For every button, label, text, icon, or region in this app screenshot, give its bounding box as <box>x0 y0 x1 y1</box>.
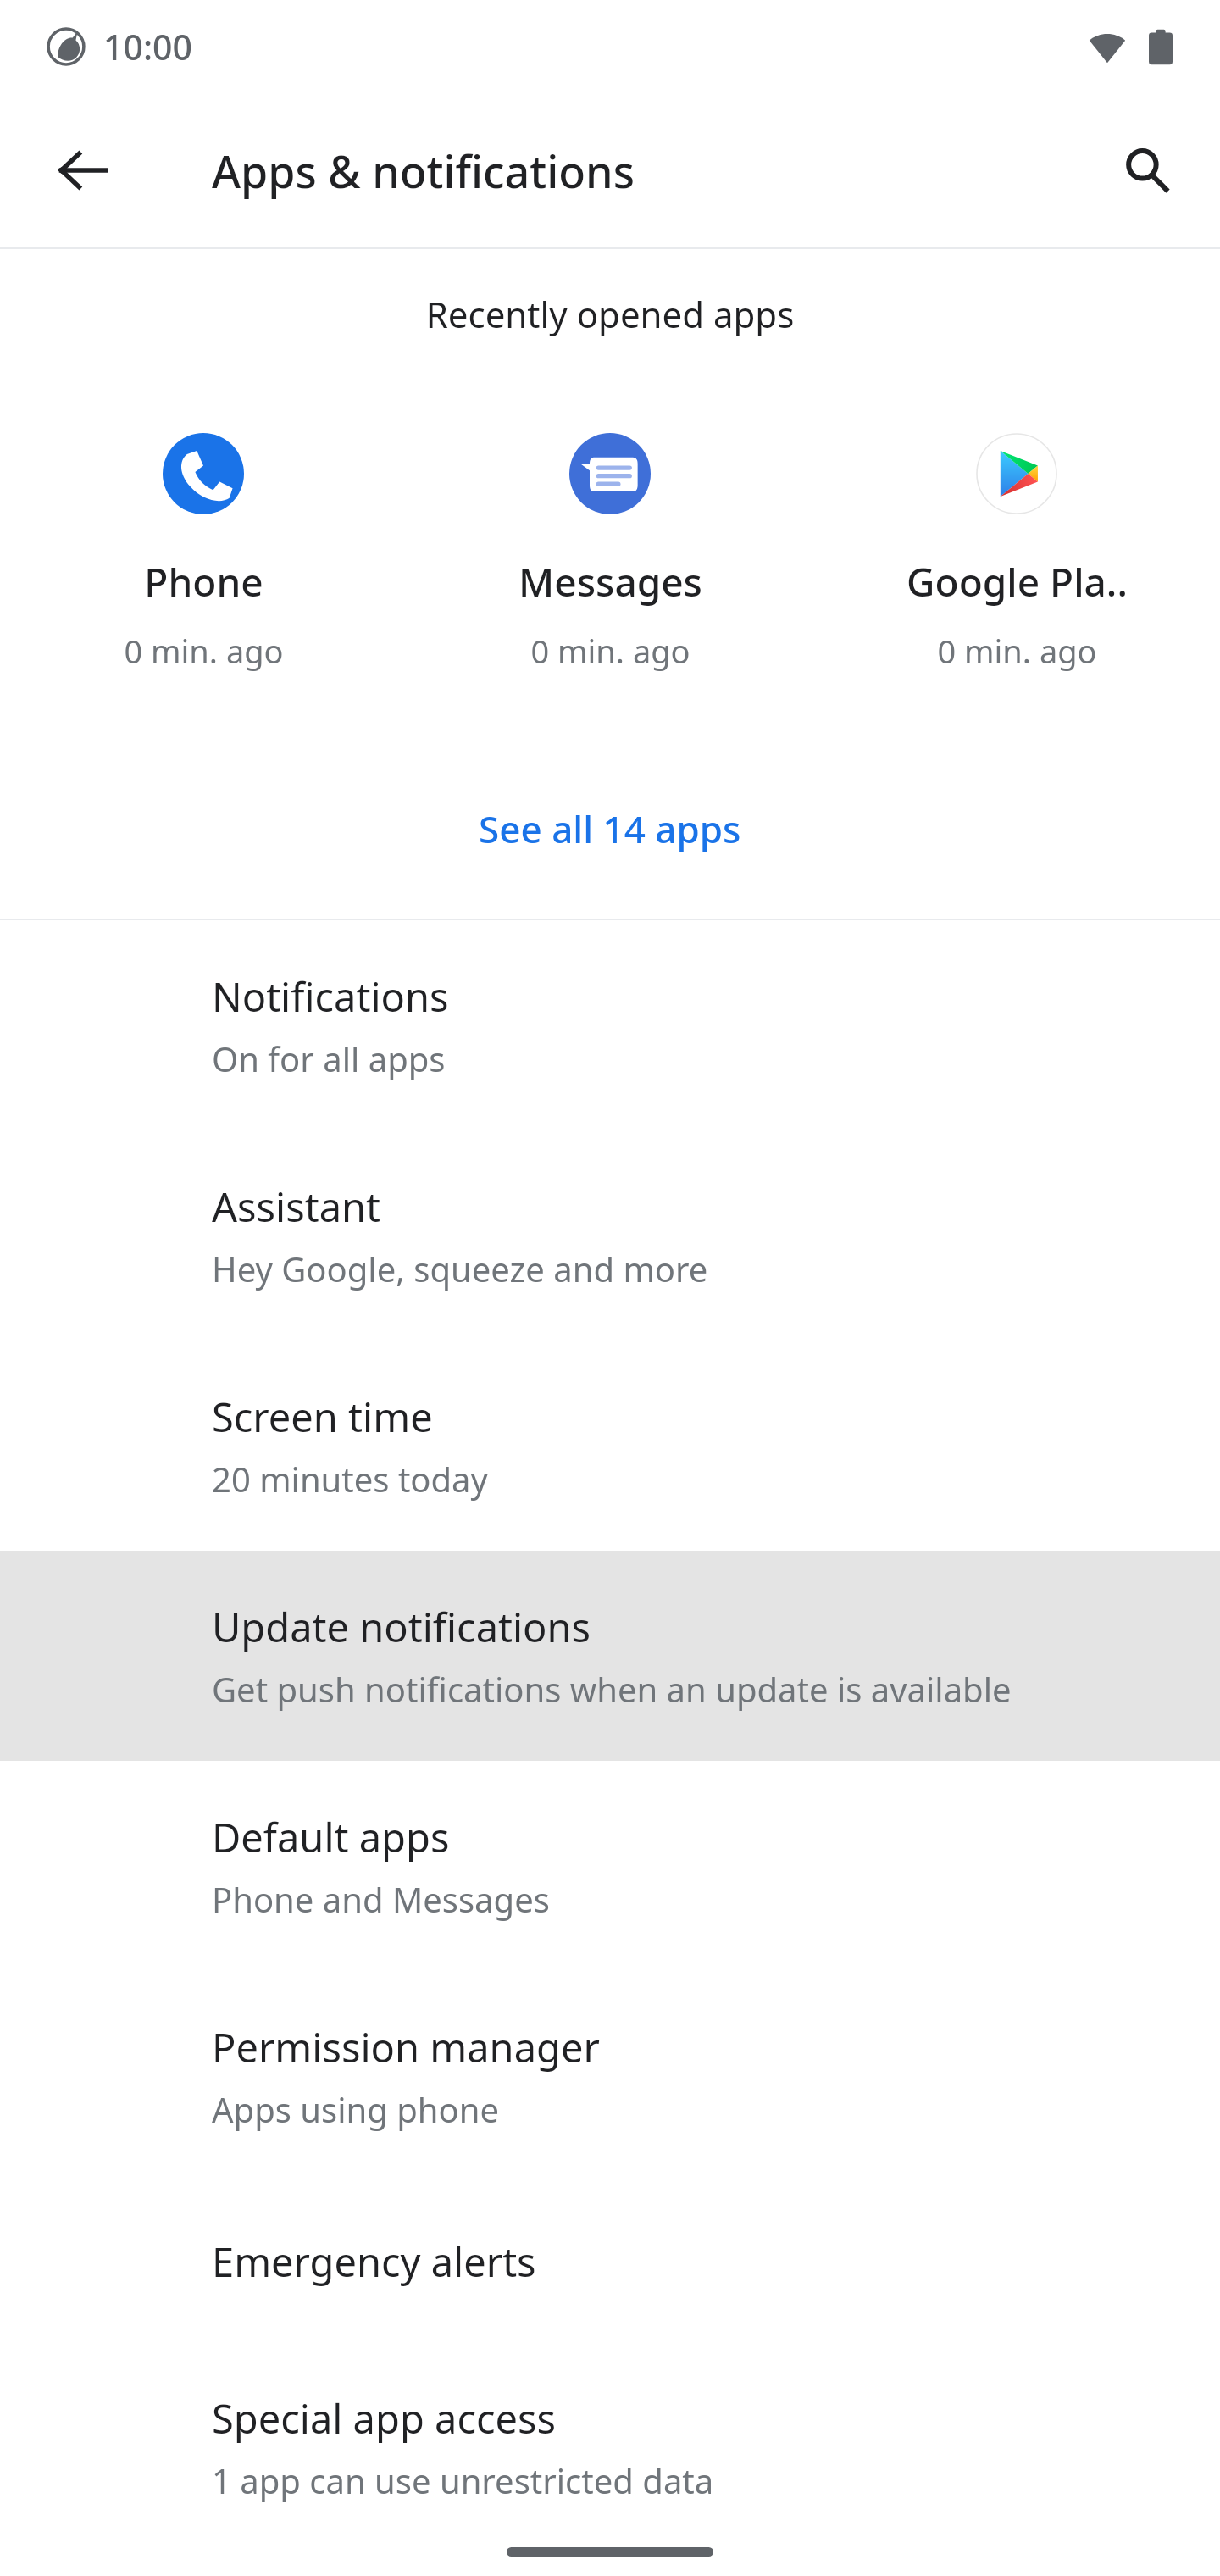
button[interactable]: Google Pla.. <box>813 433 1220 673</box>
button[interactable]: Update notifications <box>0 1551 1220 1761</box>
staticText: Update notifications <box>212 1600 591 1654</box>
staticText: Notifications <box>212 969 449 1024</box>
staticText: 20 minutes today <box>212 1456 488 1502</box>
staticText: Phone and Messages <box>212 1876 550 1922</box>
staticText: Default apps <box>212 1810 450 1864</box>
button[interactable]: Permission manager <box>0 1971 1220 2181</box>
button[interactable]: Search <box>1100 123 1195 218</box>
staticText: Hey Google, squeeze and more <box>212 1246 708 1291</box>
button[interactable]: Assistant <box>0 1130 1220 1341</box>
staticText: Apps using phone <box>212 2086 500 2132</box>
button[interactable]: Messages <box>407 433 813 673</box>
staticText: 0 min. ago <box>530 629 690 673</box>
staticText: Recently opened apps <box>0 290 1220 338</box>
staticText: Emergency alerts <box>212 2235 536 2289</box>
button[interactable]: Emergency alerts <box>0 2181 1220 2342</box>
staticText: Messages <box>518 555 702 608</box>
button[interactable]: Back <box>36 123 130 218</box>
staticText: 1 app can use unrestricted data <box>212 2457 714 2503</box>
staticText: Apps & notifications <box>212 141 635 201</box>
staticText: Phone <box>144 555 263 608</box>
staticText: 10:00 <box>103 23 192 70</box>
button[interactable]: Default apps <box>0 1761 1220 1971</box>
button[interactable]: Phone <box>0 433 407 673</box>
staticText: Permission manager <box>212 2020 600 2074</box>
staticText: Get push notifications when an update is… <box>212 1666 1012 1712</box>
staticText: On for all apps <box>212 1035 446 1081</box>
staticText: 0 min. ago <box>124 629 284 673</box>
staticText: Screen time <box>212 1390 433 1444</box>
button[interactable]: Screen time <box>0 1341 1220 1551</box>
staticText: Assistant <box>212 1180 381 1234</box>
button[interactable]: Notifications <box>0 920 1220 1130</box>
staticText: Special app access <box>212 2391 557 2446</box>
staticText: 0 min. ago <box>937 629 1097 673</box>
button[interactable]: See all 14 apps <box>0 781 1220 876</box>
staticText: Google Pla.. <box>907 555 1128 608</box>
button[interactable]: Special app access <box>0 2342 1220 2552</box>
staticText: See all 14 apps <box>479 803 741 854</box>
